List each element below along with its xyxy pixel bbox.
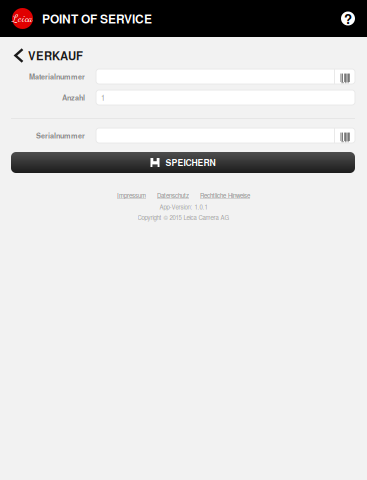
staticText: Copyright © 2015 Leica Camera AG [137, 213, 229, 222]
button[interactable]: Hilfe [341, 11, 367, 25]
staticText: Anzahl [62, 92, 85, 103]
button[interactable]: Barcode scannen [335, 69, 355, 84]
button[interactable]: VERKAUF [0, 37, 367, 68]
staticText: Materialnummer [29, 71, 85, 82]
button[interactable]: Rechtliche Hinweise [200, 191, 250, 200]
staticText: Datenschutz [157, 191, 189, 200]
staticText: App-Version: 1.0.1 [159, 203, 207, 211]
staticText: Leica [12, 12, 33, 25]
staticText: Serialnummer [36, 130, 85, 141]
staticText: Rechtliche Hinweise [200, 191, 250, 200]
staticText: VERKAUF [28, 47, 83, 64]
staticText: POINT OF SERVICE [42, 10, 152, 27]
button[interactable]: Barcode scannen [335, 128, 355, 143]
staticText: 1 [101, 92, 105, 103]
staticText: ? [344, 9, 352, 28]
staticText: SPEICHERN [165, 156, 215, 169]
staticText: Impressum [117, 191, 146, 200]
button[interactable]: SPEICHERN [0, 152, 367, 173]
button[interactable]: Datenschutz [157, 191, 189, 200]
button[interactable]: Impressum [117, 191, 146, 200]
